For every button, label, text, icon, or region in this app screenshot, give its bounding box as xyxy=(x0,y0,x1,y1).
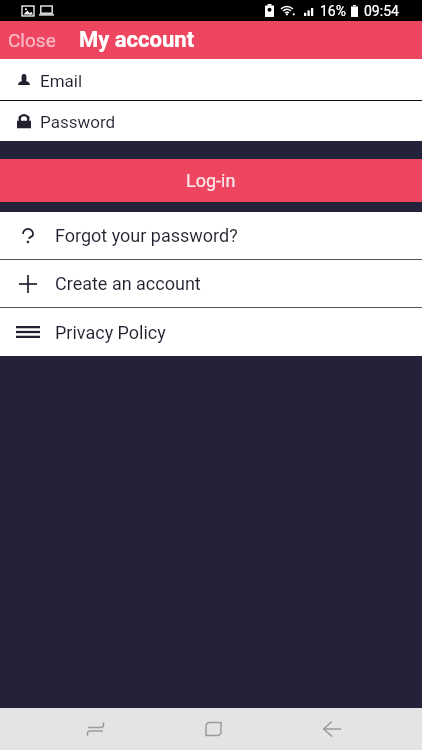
button[interactable]: Home xyxy=(183,708,243,750)
staticText: Close xyxy=(8,29,56,51)
staticText: My account xyxy=(79,27,195,53)
staticText: Email xyxy=(40,71,83,91)
staticText: Forgot your password? xyxy=(55,225,238,246)
button[interactable]: Back xyxy=(302,708,362,750)
button[interactable]: Email xyxy=(0,59,422,100)
button[interactable]: Password xyxy=(0,101,422,141)
staticText: Privacy Policy xyxy=(55,322,166,343)
staticText: 09:54 xyxy=(364,3,399,19)
button[interactable]: Privacy Policy xyxy=(0,308,422,356)
button[interactable]: Create an account xyxy=(0,260,422,307)
button[interactable]: Forgot your password? xyxy=(0,212,422,259)
staticText: Log-in xyxy=(186,170,236,191)
staticText: Password xyxy=(40,112,116,132)
staticText: 16% xyxy=(320,3,346,19)
button[interactable]: Recent apps xyxy=(65,708,125,750)
button[interactable]: Close xyxy=(2,21,78,59)
button[interactable]: Log-in xyxy=(0,159,422,202)
staticText: Create an account xyxy=(55,273,201,294)
